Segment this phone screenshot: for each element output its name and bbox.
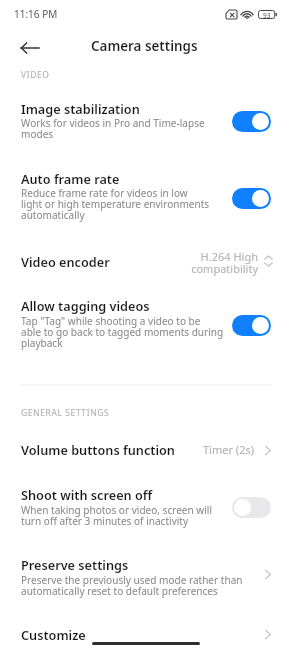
- staticText: Video encoder: [21, 253, 110, 270]
- staticText: Reduce frame rate for videos in low ligh…: [21, 186, 210, 222]
- button[interactable]: Back: [14, 32, 46, 64]
- button[interactable]: Allow tagging videos: [0, 293, 293, 353]
- staticText: Image stabilization: [21, 100, 140, 117]
- staticText: Volume buttons function: [21, 441, 175, 458]
- staticText: Customize: [21, 626, 86, 643]
- staticText: GENERAL SETTINGS: [21, 407, 110, 419]
- staticText: Preserve settings: [21, 556, 129, 573]
- staticText: Works for videos in Pro and Time-lapse m…: [21, 116, 205, 141]
- button[interactable]: Toggle on: [232, 315, 271, 336]
- staticText: Auto frame rate: [21, 170, 120, 187]
- staticText: H.264 High compatibility: [191, 249, 258, 276]
- button[interactable]: Auto frame rate: [0, 165, 293, 221]
- staticText: Allow tagging videos: [21, 297, 150, 314]
- button[interactable]: Volume buttons function: [0, 430, 293, 470]
- button[interactable]: Video encoder: [0, 241, 293, 281]
- button[interactable]: Preserve settings: [0, 552, 293, 600]
- staticText: When taking photos or video, screen will…: [21, 503, 213, 528]
- staticText: VIDEO: [21, 69, 50, 81]
- button[interactable]: Toggle on: [232, 188, 271, 209]
- button[interactable]: Toggle off: [232, 497, 271, 518]
- staticText: 93: [263, 11, 271, 20]
- staticText: Timer (2s): [203, 442, 255, 457]
- staticText: Tap "Tag" while shooting a video to be a…: [21, 314, 224, 350]
- button[interactable]: Shoot with screen off: [0, 482, 293, 530]
- staticText: 11:16 PM: [14, 7, 58, 21]
- staticText: Camera settings: [91, 37, 198, 55]
- staticText: Preserve the previously used mode rather…: [21, 573, 243, 598]
- button[interactable]: Customize: [0, 616, 293, 650]
- button[interactable]: Image stabilization: [0, 95, 293, 143]
- button[interactable]: Toggle on: [232, 111, 271, 132]
- staticText: Shoot with screen off: [21, 486, 153, 503]
